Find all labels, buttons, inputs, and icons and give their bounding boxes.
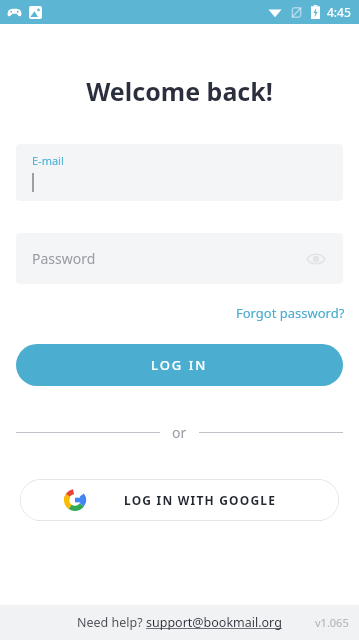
staticText: Forgot password? — [236, 304, 345, 322]
button[interactable]: E-mail — [16, 144, 343, 201]
button[interactable]: Need help? — [77, 614, 282, 631]
staticText: 4:45 — [327, 4, 351, 20]
button[interactable]: Password — [16, 233, 343, 284]
staticText: LOG IN WITH GOOGLE — [124, 492, 277, 508]
button[interactable]: LOG IN — [16, 344, 343, 386]
staticText: v1.065 — [315, 615, 349, 630]
staticText: or — [172, 423, 187, 442]
button[interactable]: Forgot password? — [222, 300, 359, 326]
staticText: LOG IN — [151, 356, 208, 374]
button[interactable]: Show password — [299, 242, 333, 276]
button[interactable]: LOG IN WITH GOOGLE — [20, 479, 339, 521]
staticText: Password — [32, 249, 96, 268]
staticText: support@bookmail.org — [146, 614, 282, 631]
staticText: E-mail — [32, 153, 64, 168]
staticText: Welcome back! — [0, 74, 359, 108]
staticText: Need help? — [77, 614, 146, 631]
